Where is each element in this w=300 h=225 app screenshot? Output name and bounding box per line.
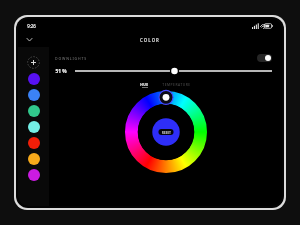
- button[interactable]: Select colour: [28, 153, 40, 165]
- button[interactable]: Select colour: [28, 169, 40, 181]
- staticText: 51 %: [55, 68, 67, 75]
- button[interactable]: Select colour: [28, 73, 40, 85]
- staticText: COLOR: [140, 37, 160, 43]
- button[interactable]: Reset colour: [152, 118, 180, 146]
- button[interactable]: Select colour: [28, 105, 40, 117]
- button[interactable]: TEMPERATURE: [160, 82, 193, 86]
- button[interactable]: Select colour: [28, 121, 40, 133]
- button[interactable]: Downlights on: [257, 54, 272, 62]
- staticText: HUE: [140, 82, 149, 86]
- button[interactable]: HUE: [138, 82, 151, 88]
- button[interactable]: Add color: [27, 56, 40, 69]
- button[interactable]: Select colour: [28, 89, 40, 101]
- staticText: DOWNLIGHTS: [55, 56, 87, 61]
- staticText: 9:26: [27, 23, 36, 29]
- staticText: TEMPERATURE: [162, 82, 191, 86]
- staticText: RESET: [162, 131, 171, 134]
- button[interactable]: Brightness slider: [75, 66, 272, 76]
- button[interactable]: Select colour: [28, 137, 40, 149]
- button[interactable]: Collapse panel: [23, 33, 36, 46]
